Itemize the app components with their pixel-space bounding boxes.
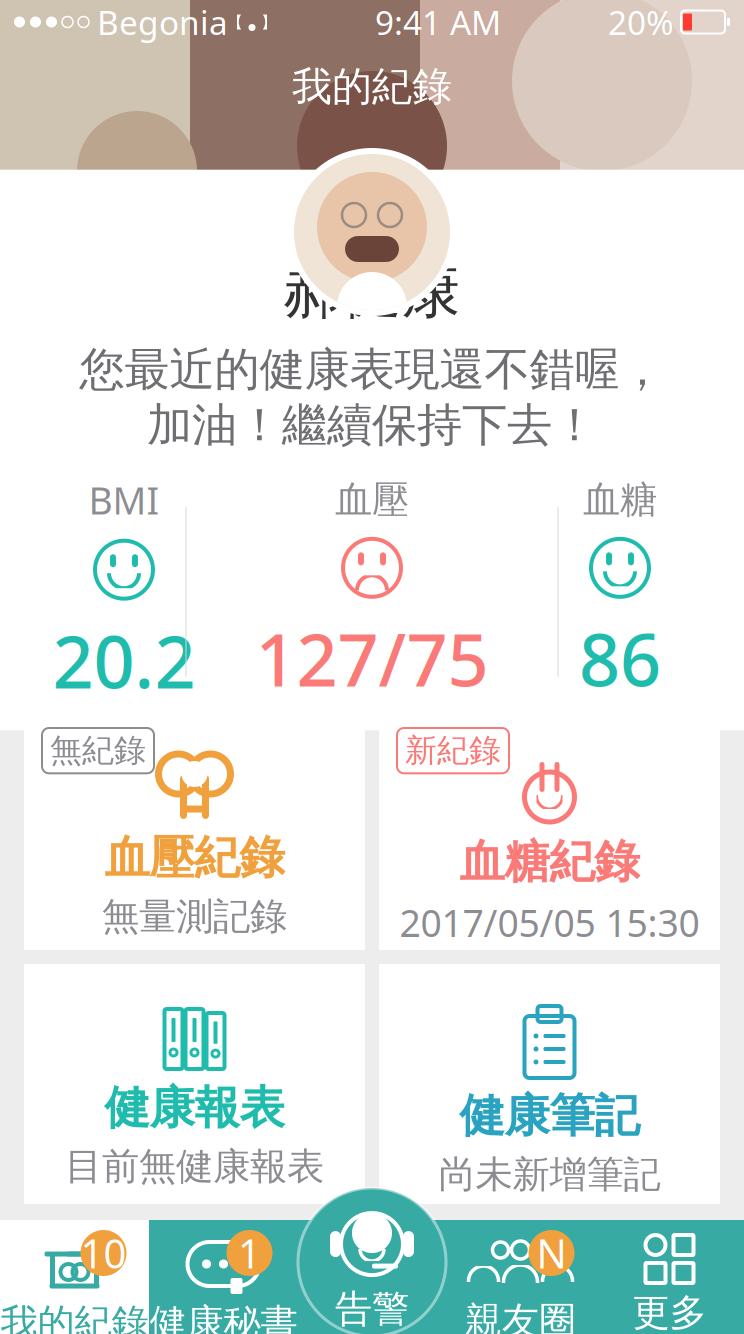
staticText: 加油！繼續保持下去！ bbox=[147, 397, 597, 453]
button[interactable]: 更多 bbox=[595, 1220, 744, 1334]
staticText: Begonia bbox=[97, 0, 228, 44]
staticText: 尚未新增筆記 bbox=[438, 1152, 660, 1198]
staticText: 血糖紀錄 bbox=[459, 834, 639, 890]
staticText: 2017/05/05 15:30 bbox=[399, 898, 699, 947]
button[interactable]: 10 bbox=[0, 1220, 149, 1334]
staticText: 我的紀錄 bbox=[0, 1300, 148, 1334]
staticText: BMI bbox=[88, 475, 159, 525]
button[interactable]: 血壓紀錄 bbox=[24, 710, 365, 950]
staticText: 86 bbox=[579, 611, 661, 706]
staticText: 郝健康 bbox=[283, 256, 460, 328]
button[interactable]: 告警 bbox=[298, 1188, 446, 1334]
staticText: 健康筆記 bbox=[459, 1088, 639, 1144]
staticText: 127/75 bbox=[255, 611, 488, 706]
button[interactable]: 1 bbox=[149, 1220, 298, 1334]
staticText: 無紀錄 bbox=[50, 731, 146, 770]
button[interactable]: 血糖紀錄 bbox=[379, 710, 720, 950]
staticText: 1 bbox=[238, 1226, 261, 1279]
staticText: 20% bbox=[608, 0, 674, 44]
staticText: 您最近的健康表現還不錯喔， bbox=[79, 342, 664, 397]
staticText: N bbox=[536, 1226, 566, 1279]
staticText: 血壓 bbox=[335, 477, 409, 523]
staticText: 血糖 bbox=[583, 477, 657, 523]
staticText: 更多 bbox=[632, 1290, 706, 1334]
staticText: 新紀錄 bbox=[405, 731, 501, 770]
staticText: 9:41 AM bbox=[375, 0, 501, 44]
button[interactable]: 健康報表 bbox=[24, 964, 365, 1204]
staticText: 10 bbox=[80, 1226, 126, 1279]
staticText: 親友圈 bbox=[465, 1298, 576, 1334]
staticText: 我的紀錄 bbox=[292, 62, 452, 111]
staticText: 20.2 bbox=[52, 613, 195, 708]
staticText: 血壓紀錄 bbox=[104, 830, 284, 886]
staticText: 健康報表 bbox=[104, 1080, 284, 1136]
button[interactable]: 健康筆記 bbox=[379, 964, 720, 1204]
button[interactable]: N bbox=[446, 1220, 595, 1334]
staticText: 告警 bbox=[335, 1286, 409, 1332]
staticText: 目前無健康報表 bbox=[65, 1144, 324, 1190]
staticText: 無量測記錄 bbox=[102, 894, 287, 940]
staticText: 健康秘書 bbox=[149, 1300, 297, 1334]
